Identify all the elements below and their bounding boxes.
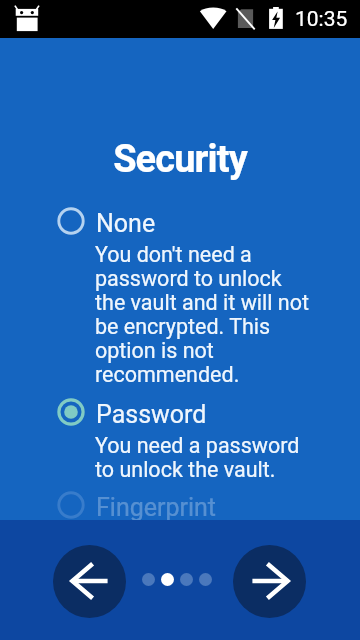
staticText: Password <box>96 400 207 429</box>
button[interactable]: Next <box>233 545 306 618</box>
button[interactable]: Password <box>0 400 360 482</box>
button[interactable]: Back <box>53 545 126 618</box>
staticText: None <box>96 209 156 238</box>
button[interactable]: None <box>0 209 360 387</box>
staticText: Security <box>0 137 360 182</box>
button[interactable]: Fingerprint <box>0 493 360 522</box>
staticText: You don't need a password to unlock the … <box>95 242 312 387</box>
staticText: You need a password to unlock the vault. <box>95 433 312 482</box>
staticText: 10:35 <box>295 7 348 32</box>
staticText: Fingerprint <box>96 493 217 522</box>
